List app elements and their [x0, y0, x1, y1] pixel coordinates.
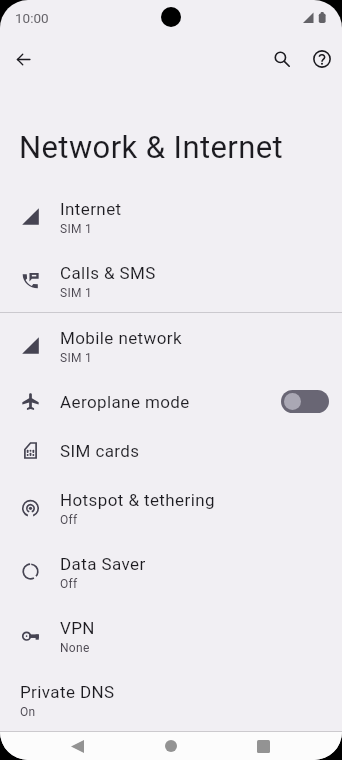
- button[interactable]: Data Saver: [0, 539, 342, 603]
- button[interactable]: Mobile network: [0, 313, 342, 377]
- button[interactable]: Search: [262, 39, 302, 79]
- button[interactable]: Private DNS: [0, 667, 342, 731]
- button[interactable]: Calls & SMS: [0, 248, 342, 312]
- button[interactable]: Internet: [0, 184, 342, 248]
- staticText: SIM 1: [60, 222, 93, 236]
- button[interactable]: Home: [124, 732, 217, 760]
- button[interactable]: Recent apps: [217, 732, 310, 760]
- button[interactable]: Back: [31, 732, 124, 760]
- button[interactable]: SIM cards: [0, 426, 342, 475]
- button[interactable]: Hotspot & tethering: [0, 475, 342, 539]
- staticText: On: [20, 705, 36, 719]
- staticText: Mobile network: [60, 328, 182, 348]
- staticText: 10:00: [15, 10, 49, 26]
- button[interactable]: Aeroplane mode: [0, 377, 342, 426]
- button[interactable]: Aeroplane mode toggle: [281, 390, 329, 413]
- button[interactable]: Navigate up: [3, 39, 43, 79]
- staticText: Off: [60, 513, 78, 527]
- staticText: Data Saver: [60, 554, 146, 574]
- staticText: VPN: [60, 618, 95, 638]
- button[interactable]: Help: [302, 39, 342, 79]
- staticText: Network & Internet: [19, 129, 284, 165]
- staticText: Internet: [60, 199, 122, 219]
- staticText: SIM 1: [60, 351, 93, 365]
- staticText: None: [60, 641, 90, 655]
- staticText: SIM cards: [60, 441, 140, 461]
- staticText: Aeroplane mode: [60, 392, 190, 412]
- staticText: SIM 1: [60, 286, 93, 300]
- staticText: Hotspot & tethering: [60, 490, 215, 510]
- staticText: Calls & SMS: [60, 263, 156, 283]
- staticText: Off: [60, 577, 78, 591]
- staticText: Private DNS: [20, 682, 115, 702]
- button[interactable]: VPN: [0, 603, 342, 667]
